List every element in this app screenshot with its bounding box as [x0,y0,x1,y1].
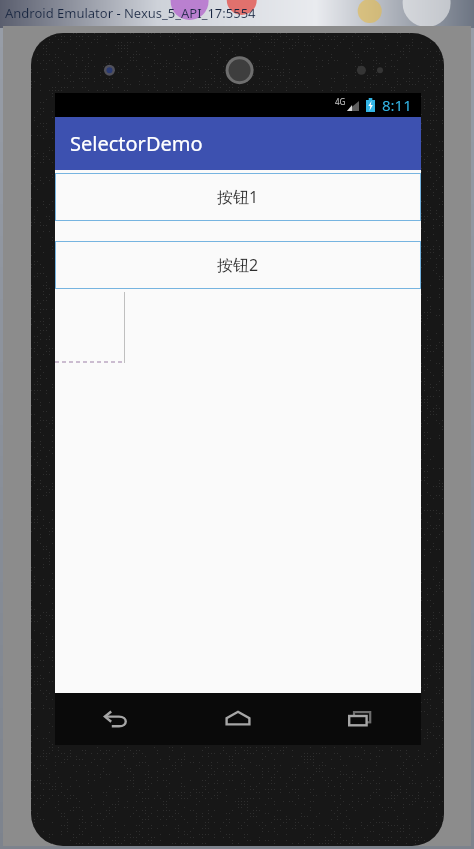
staticText: 8:11 [382,95,412,115]
staticText: 按钮2 [217,254,259,276]
button[interactable]: Recent apps [299,693,421,745]
button[interactable]: 按钮2 [55,241,421,289]
staticText: Android Emulator - Nexus_5_API_17:5554 [5,4,256,22]
staticText: 按钮1 [217,186,259,208]
button[interactable]: 按钮1 [55,173,421,221]
button[interactable]: Home [177,693,299,745]
button[interactable]: Back [55,693,177,745]
staticText: SelectorDemo [70,130,203,157]
staticText: 4G [335,96,346,107]
